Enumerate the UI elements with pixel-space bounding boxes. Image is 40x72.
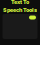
staticText: Text To bbox=[11, 0, 29, 5]
staticText: Speech Tools bbox=[3, 7, 37, 13]
